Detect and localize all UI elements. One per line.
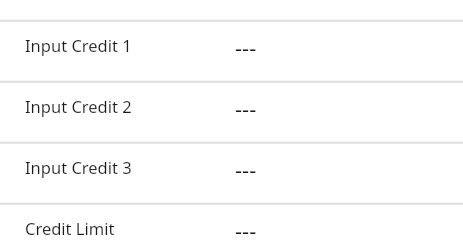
button[interactable]: Input Credit 2 xyxy=(0,82,463,143)
button[interactable]: Credit Limit xyxy=(0,204,463,252)
staticText: Input Credit 1 xyxy=(25,34,132,56)
staticText: Input Credit 2 xyxy=(25,95,132,117)
staticText: --- xyxy=(235,32,257,62)
staticText: --- xyxy=(235,93,257,123)
button[interactable]: Input Credit 1 xyxy=(0,21,463,82)
staticText: --- xyxy=(235,215,257,245)
staticText: --- xyxy=(235,154,257,184)
button[interactable]: Input Credit 3 xyxy=(0,143,463,204)
staticText: Credit Limit xyxy=(25,217,115,239)
staticText: Input Credit 3 xyxy=(25,156,132,178)
